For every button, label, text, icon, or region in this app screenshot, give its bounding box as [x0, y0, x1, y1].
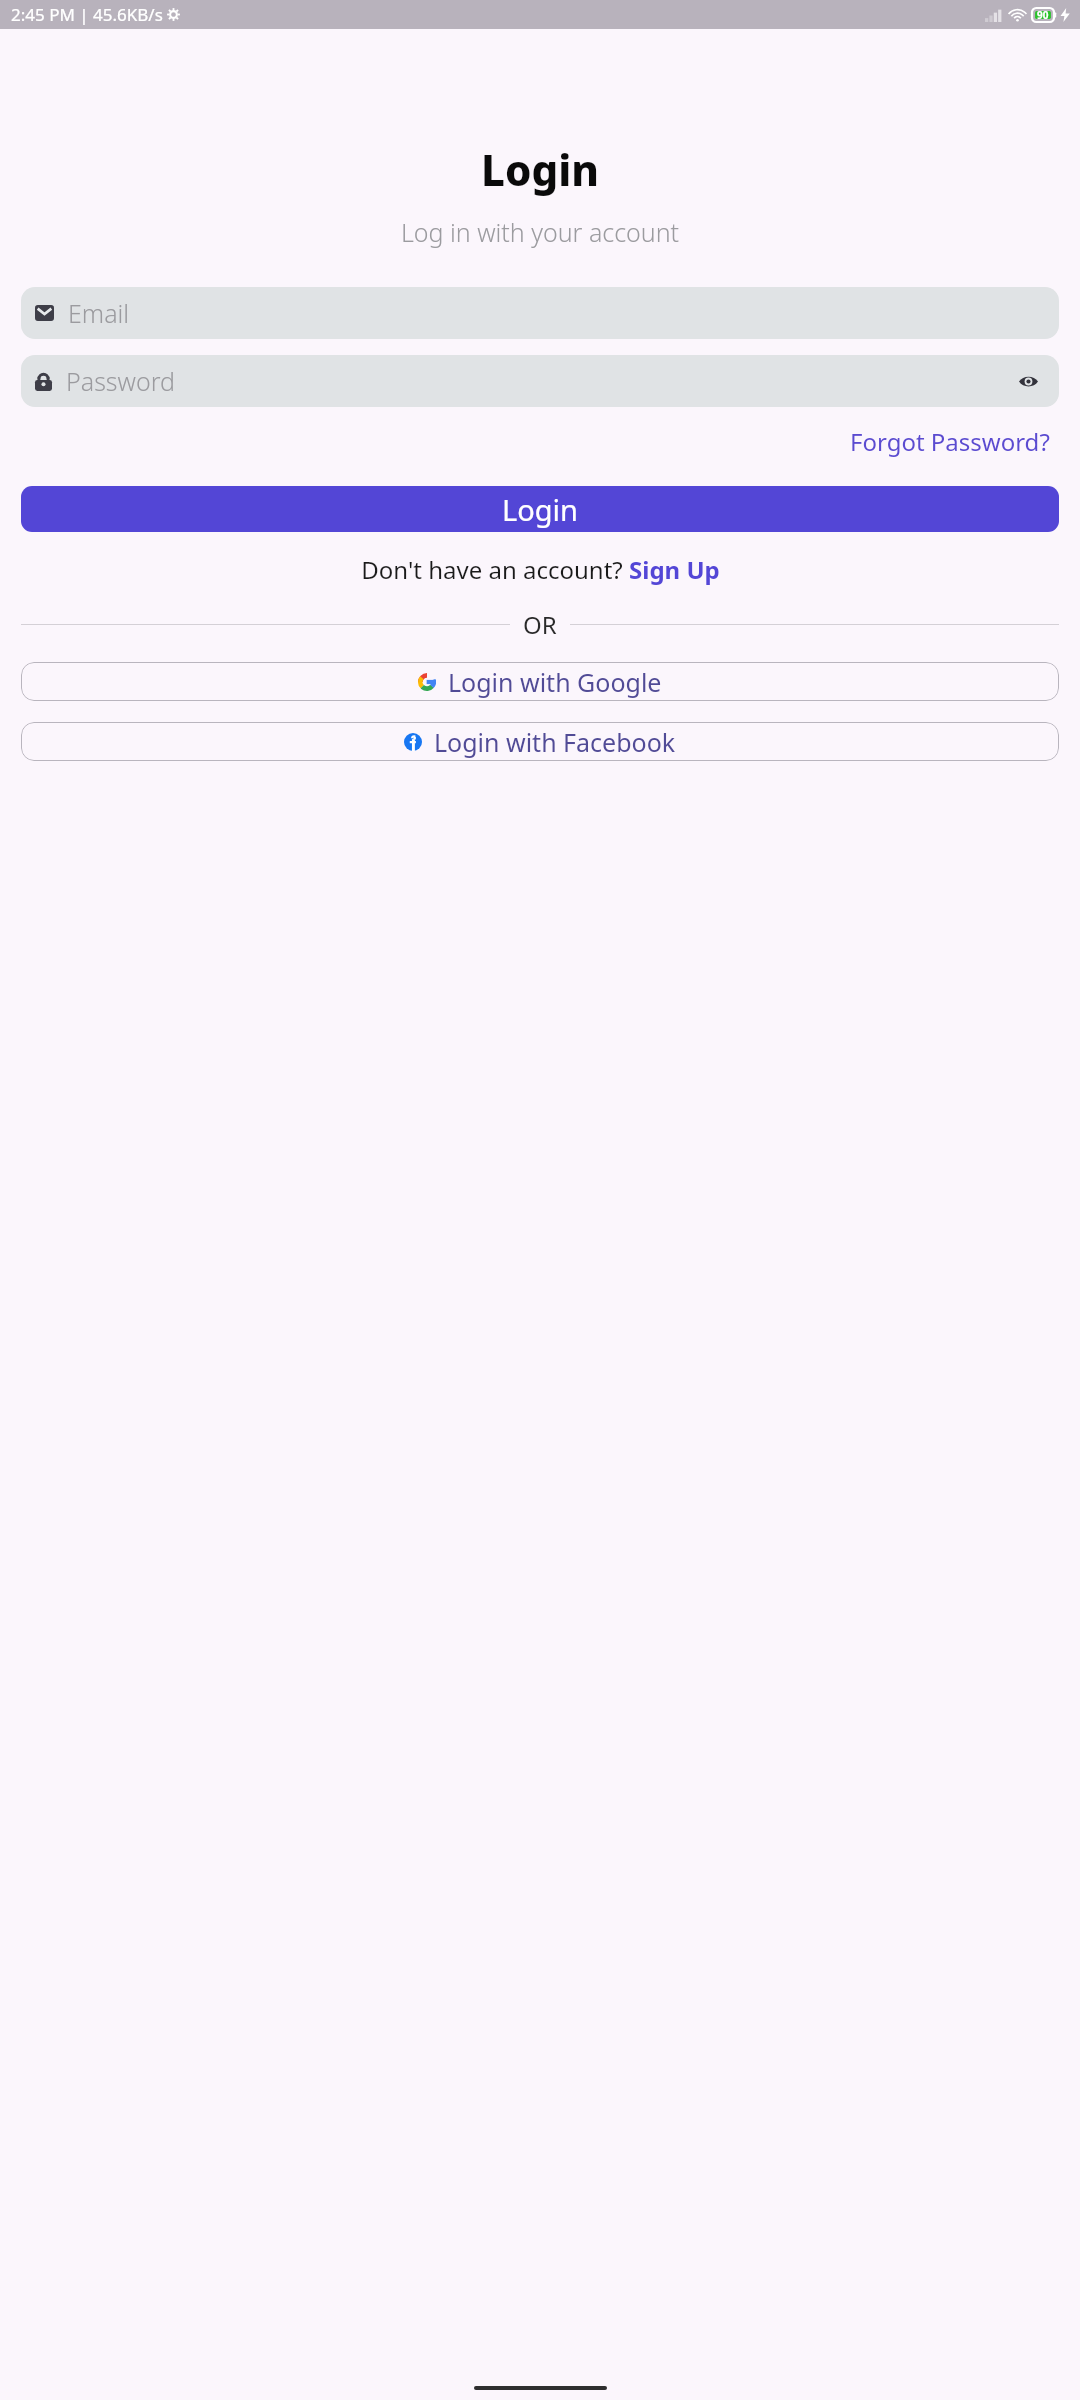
button[interactable]: Login with Facebook: [21, 722, 1059, 761]
button[interactable]: Login: [21, 486, 1059, 532]
button[interactable]: Login with Google: [21, 662, 1059, 701]
button[interactable]: Don't have an account? Sign Up: [0, 553, 1080, 586]
staticText: Forgot Password?: [850, 425, 1050, 458]
staticText: OR: [523, 608, 557, 641]
staticText: Login with Facebook: [434, 725, 676, 759]
button[interactable]: Email: [21, 287, 1059, 339]
staticText: Login: [0, 141, 1080, 198]
staticText: Password: [66, 364, 1011, 398]
staticText: Login: [502, 490, 578, 529]
staticText: Login with Google: [448, 665, 662, 699]
button[interactable]: Show password: [1011, 364, 1045, 398]
staticText: Email: [68, 296, 130, 330]
button[interactable]: Password: [21, 355, 1059, 407]
button[interactable]: Forgot Password?: [848, 423, 1052, 460]
staticText: 2:45 PM | 45.6KB/s: [11, 3, 163, 26]
staticText: Don't have an account? Sign Up: [361, 553, 720, 586]
staticText: 90: [1037, 8, 1049, 22]
staticText: Log in with your account: [0, 215, 1080, 249]
